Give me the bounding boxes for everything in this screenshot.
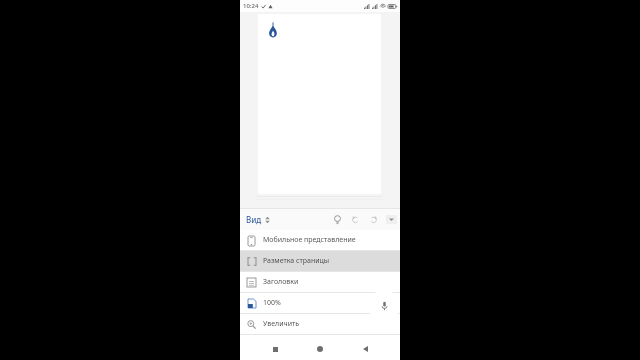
button[interactable]: Redo [364,209,382,230]
button[interactable]: Recents [265,339,285,359]
staticText: 10:24 [243,2,259,10]
button[interactable]: Home [310,339,330,359]
button[interactable]: Undo [346,209,364,230]
button[interactable]: Разметка страницы [240,251,400,271]
button[interactable]: Заголовки [240,272,400,292]
button[interactable]: More options [382,209,400,230]
staticText: Вид [246,214,262,225]
button[interactable]: Back [355,339,375,359]
button[interactable]: Dictate [368,290,400,322]
staticText: Мобильное представление [263,235,356,245]
button[interactable]: Увеличить [240,314,400,334]
button[interactable]: Мобильное представление [240,230,400,250]
staticText: Увеличить [263,319,300,329]
staticText: Разметка страницы [263,256,330,266]
staticText: 100% [263,298,281,308]
button[interactable]: Tell me [328,209,346,230]
button[interactable]: 100% [240,293,400,313]
staticText: Заголовки [263,277,299,287]
button[interactable]: Вид [240,211,274,228]
